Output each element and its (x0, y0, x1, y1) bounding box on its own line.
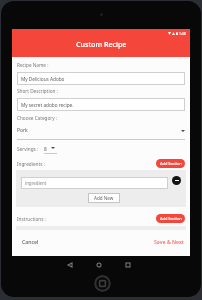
button[interactable]: ingredient (21, 177, 168, 189)
button[interactable]: Home (94, 275, 111, 292)
staticText: Add Section (160, 216, 182, 221)
button[interactable]: Add New (88, 193, 120, 203)
button[interactable]: Remove ingredient (172, 176, 181, 185)
staticText: Cancel (22, 238, 39, 244)
staticText: My secret adobo recipe. (21, 102, 74, 108)
button[interactable]: Recent apps (118, 255, 138, 275)
button[interactable]: Home screen (89, 255, 109, 275)
staticText: ingredient (25, 180, 47, 186)
button[interactable]: Back (60, 255, 80, 275)
staticText: Custom Recipe (76, 39, 127, 49)
button[interactable]: My secret adobo recipe. (17, 98, 185, 111)
staticText: Add New (94, 195, 114, 201)
staticText: Servings : (17, 146, 39, 152)
staticText: Ingredients : (17, 161, 45, 167)
button[interactable]: 8 (44, 144, 57, 154)
staticText: Short Description : (17, 88, 58, 94)
staticText: Recipe Name : (17, 62, 49, 68)
staticText: Save & Next (154, 238, 184, 244)
staticText: Add Section (160, 161, 182, 166)
staticText: 8 (44, 146, 47, 153)
button[interactable]: Cancel (21, 236, 40, 246)
staticText: Instructions : (17, 216, 46, 222)
staticText: Choose Category : (17, 115, 58, 121)
button[interactable]: Pork (17, 127, 185, 134)
staticText: My Delicious Adobo (21, 76, 65, 82)
staticText: 1:48 (179, 31, 186, 36)
button[interactable]: Add Section (156, 214, 185, 223)
button[interactable]: My Delicious Adobo (17, 72, 185, 85)
staticText: Pork (17, 127, 28, 134)
button[interactable]: Add Section (156, 159, 185, 168)
button[interactable]: Save & Next (153, 236, 185, 246)
